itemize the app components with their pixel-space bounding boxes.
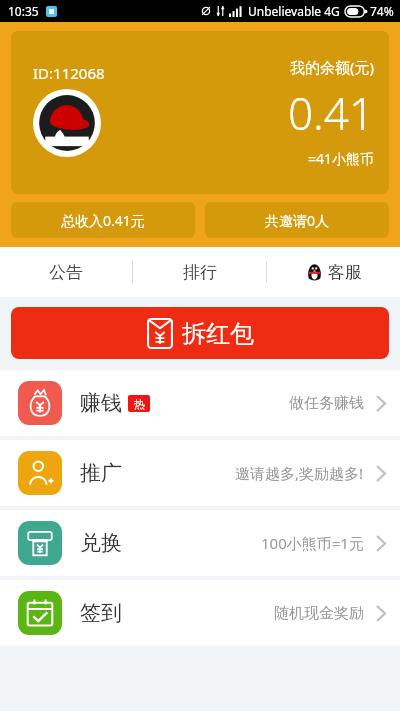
staticText: 邀请越多,奖励越多! (235, 463, 364, 483)
staticText: 我的余额(元) (290, 57, 375, 77)
staticText: 10:35 (8, 3, 39, 19)
button[interactable]: 客服 (267, 247, 400, 297)
button[interactable]: 签到 (0, 580, 400, 646)
button[interactable]: 推广 (0, 440, 400, 506)
staticText: 100小熊币=1元 (261, 533, 364, 553)
button[interactable]: 排行 (133, 247, 266, 297)
staticText: 共邀请0人 (265, 211, 330, 230)
staticText: 兑换 (80, 530, 122, 556)
staticText: 热 (134, 397, 145, 411)
staticText: 拆红包 (182, 319, 254, 349)
staticText: 排行 (183, 262, 217, 283)
staticText: 74% (370, 3, 394, 19)
staticText: 总收入0.41元 (61, 211, 145, 230)
staticText: 0.41 (288, 83, 375, 143)
staticText: 公告 (49, 262, 83, 283)
button[interactable]: 共邀请0人 (205, 202, 389, 238)
staticText: 推广 (80, 460, 122, 486)
staticText: 赚钱 (80, 390, 122, 416)
button[interactable]: 兑换 (0, 510, 400, 576)
staticText: ID:112068 (33, 63, 105, 83)
button[interactable]: 总收入0.41元 (11, 202, 195, 238)
staticText: 随机现金奖励 (274, 604, 364, 623)
staticText: Unbelievable 4G (248, 3, 340, 19)
button[interactable]: 拆红包 (11, 307, 389, 359)
staticText: =41小熊币 (308, 149, 375, 168)
button[interactable]: 公告 (0, 247, 132, 297)
staticText: 做任务赚钱 (289, 394, 364, 413)
staticText: 客服 (328, 262, 362, 283)
staticText: 签到 (80, 600, 122, 626)
button[interactable]: 赚钱 (0, 370, 400, 436)
